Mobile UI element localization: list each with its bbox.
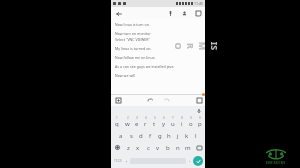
staticText: q bbox=[115, 120, 119, 128]
button[interactable]: Menu bbox=[195, 96, 203, 104]
staticText: d bbox=[139, 132, 143, 140]
staticText: w bbox=[125, 120, 130, 128]
button[interactable]: a bbox=[116, 128, 126, 141]
button[interactable]: , bbox=[123, 154, 130, 167]
staticText: j bbox=[177, 132, 179, 140]
button[interactable]: Share bbox=[180, 9, 188, 17]
button[interactable]: 2 bbox=[122, 115, 132, 128]
button[interactable]: h bbox=[164, 128, 173, 141]
button[interactable]: ?123 bbox=[113, 154, 123, 167]
staticText: i bbox=[181, 120, 183, 128]
button[interactable]: z bbox=[123, 141, 133, 154]
staticText: 8 bbox=[181, 116, 183, 120]
staticText: ISM ROCKS bbox=[175, 40, 221, 52]
button[interactable]: c bbox=[143, 141, 153, 154]
staticText: b bbox=[166, 144, 170, 152]
staticText: v bbox=[156, 144, 160, 152]
staticText: m bbox=[185, 144, 191, 152]
staticText: As u can see guys we installed java bbox=[115, 64, 174, 69]
staticText: r bbox=[144, 120, 147, 128]
button[interactable]: 4 bbox=[141, 115, 150, 128]
button[interactable]: Backspace bbox=[193, 141, 204, 154]
staticText: p bbox=[198, 120, 202, 128]
staticText: k bbox=[185, 132, 189, 140]
button[interactable]: m bbox=[183, 141, 193, 154]
staticText: h bbox=[167, 132, 171, 140]
staticText: My linux is turned on. bbox=[115, 46, 152, 51]
button[interactable]: Send bbox=[193, 156, 203, 166]
staticText: ISM ROCKS bbox=[266, 160, 286, 165]
button[interactable]: Add bbox=[114, 96, 122, 104]
button[interactable]: b bbox=[163, 141, 173, 154]
button[interactable]: Undo bbox=[146, 96, 154, 104]
staticText: 3 bbox=[136, 116, 138, 120]
staticText: 11:45 bbox=[194, 1, 203, 6]
staticText: 7 bbox=[172, 116, 174, 120]
staticText: x bbox=[136, 144, 140, 152]
button[interactable]: 8 bbox=[177, 115, 186, 128]
staticText: z bbox=[127, 144, 130, 152]
staticText: 2 bbox=[127, 116, 129, 120]
button[interactable]: 3 bbox=[132, 115, 141, 128]
staticText: Select "VNC VIEWER" bbox=[115, 37, 150, 42]
button[interactable]: 9 bbox=[186, 115, 195, 128]
staticText: s bbox=[130, 132, 133, 140]
button[interactable]: Back bbox=[114, 9, 123, 18]
button[interactable]: l bbox=[191, 128, 200, 141]
staticText: Now linux is turn on. bbox=[115, 22, 150, 27]
button[interactable]: . bbox=[186, 154, 193, 167]
staticText: f bbox=[149, 132, 152, 140]
button[interactable]: j bbox=[173, 128, 182, 141]
staticText: Now we will bbox=[115, 73, 135, 78]
button[interactable]: Redo bbox=[162, 96, 170, 104]
button[interactable]: f bbox=[146, 128, 155, 141]
button[interactable]: n bbox=[173, 141, 183, 154]
button[interactable]: Pin bbox=[166, 9, 174, 17]
button[interactable]: d bbox=[136, 128, 146, 141]
staticText: n bbox=[176, 144, 180, 152]
staticText: c bbox=[147, 144, 150, 152]
staticText: 6 bbox=[163, 116, 165, 120]
button[interactable]: g bbox=[155, 128, 164, 141]
button[interactable]: More options bbox=[194, 9, 202, 17]
staticText: ?123 bbox=[114, 158, 122, 163]
staticText: . bbox=[189, 157, 191, 164]
button[interactable]: v bbox=[153, 141, 163, 154]
staticText: 4 bbox=[145, 116, 147, 120]
staticText: g bbox=[158, 132, 162, 140]
button[interactable]: k bbox=[182, 128, 191, 141]
staticText: Now turn on monitor bbox=[115, 31, 151, 36]
staticText: o bbox=[189, 120, 193, 128]
button[interactable]: 0 bbox=[195, 115, 204, 128]
staticText: t bbox=[153, 120, 156, 128]
button[interactable]: 5 bbox=[150, 115, 159, 128]
staticText: u bbox=[171, 120, 175, 128]
staticText: e bbox=[135, 120, 139, 128]
button[interactable]: s bbox=[126, 128, 136, 141]
staticText: 5 bbox=[154, 116, 156, 120]
button[interactable]: Shift bbox=[112, 141, 123, 154]
staticText: Now follow me on linux. bbox=[115, 55, 156, 60]
staticText: 9 bbox=[190, 116, 192, 120]
staticText: , bbox=[126, 157, 128, 164]
button[interactable]: 1 bbox=[112, 115, 122, 128]
button[interactable]: 6 bbox=[159, 115, 168, 128]
staticText: 0 bbox=[199, 116, 201, 120]
button[interactable]: Voice input bbox=[195, 107, 202, 114]
button[interactable]: x bbox=[133, 141, 143, 154]
staticText: 1 bbox=[116, 116, 118, 120]
staticText: l bbox=[195, 132, 197, 140]
staticText: y bbox=[162, 120, 166, 128]
staticText: a bbox=[119, 132, 123, 140]
button[interactable]: 7 bbox=[168, 115, 177, 128]
